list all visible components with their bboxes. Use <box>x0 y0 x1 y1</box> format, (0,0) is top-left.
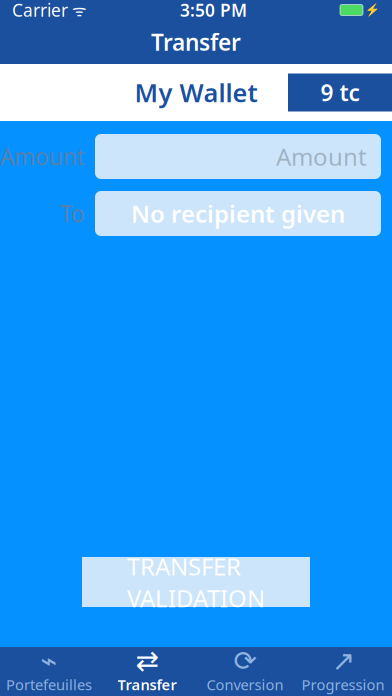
staticText: TRANSFER VALIDATION <box>127 550 265 614</box>
staticText: Transfer <box>151 27 241 57</box>
button[interactable]: ↗ <box>294 647 392 696</box>
staticText: 9 tc <box>320 77 359 107</box>
button[interactable]: TRANSFER VALIDATION <box>82 557 310 607</box>
staticText: 3:50 PM <box>180 0 247 21</box>
button[interactable]: My Wallet <box>0 64 392 121</box>
staticText: Carrier <box>12 0 68 21</box>
button[interactable]: ⌁ <box>0 647 98 696</box>
button[interactable]: ⟳ <box>196 647 294 696</box>
button[interactable]: No recipient given <box>95 191 381 236</box>
staticText: Portefeuilles <box>6 675 92 694</box>
staticText: Amount <box>0 141 85 171</box>
staticText: ⌁ <box>40 645 57 677</box>
staticText: ↗ <box>331 645 354 677</box>
staticText: Amount <box>276 141 367 172</box>
staticText: ⟳ <box>233 645 256 677</box>
staticText: To <box>60 198 85 228</box>
staticText: Transfer <box>117 675 176 694</box>
staticText: ᯤ <box>68 0 87 21</box>
staticText: ⇄ <box>135 645 158 677</box>
staticText: Conversion <box>206 675 283 694</box>
staticText: Progression <box>301 675 384 694</box>
staticText: My Wallet <box>134 76 257 109</box>
button[interactable]: ⇄ <box>98 647 196 696</box>
staticText: No recipient given <box>131 198 345 229</box>
button[interactable]: Amount <box>95 134 381 179</box>
staticText: ⚡ <box>365 3 380 17</box>
